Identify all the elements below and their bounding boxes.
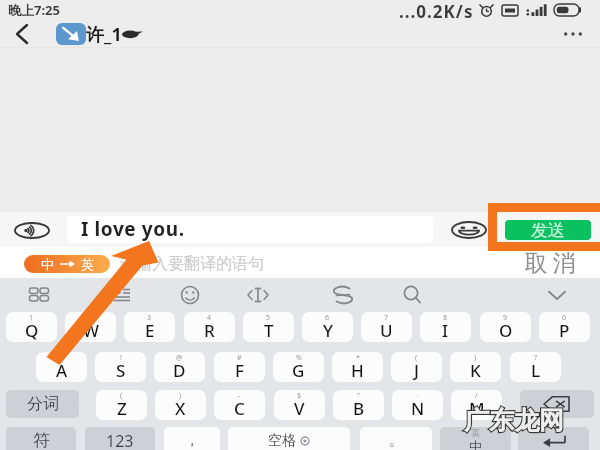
button[interactable]: Clipboard bbox=[106, 282, 138, 306]
button[interactable]: Handwriting bbox=[327, 282, 359, 306]
staticText: I love you. bbox=[81, 216, 185, 242]
staticText: 许_1 bbox=[86, 22, 122, 46]
button[interactable]: 0 bbox=[539, 312, 590, 342]
button[interactable]: Voice input bbox=[9, 216, 55, 245]
staticText: X bbox=[175, 397, 186, 420]
button[interactable]: $ bbox=[274, 390, 325, 420]
staticText: 取消 bbox=[522, 249, 578, 277]
staticText: # bbox=[237, 353, 242, 363]
button[interactable]: 中 bbox=[24, 255, 110, 273]
button[interactable]: 6 bbox=[302, 312, 353, 342]
staticText: 请输入要翻译的语句 bbox=[120, 254, 264, 274]
button[interactable]: 空格 bbox=[228, 427, 350, 450]
button[interactable]: * bbox=[332, 352, 383, 382]
staticText: G bbox=[292, 359, 305, 382]
button[interactable]: 4 bbox=[184, 312, 235, 342]
button[interactable]: Backspace bbox=[520, 390, 594, 418]
staticText: Z bbox=[117, 397, 127, 420]
button[interactable]: 英 bbox=[440, 427, 511, 450]
button[interactable]: Search bbox=[396, 282, 428, 306]
button[interactable]: ) bbox=[155, 390, 206, 420]
staticText: J bbox=[414, 359, 419, 382]
staticText: 6 bbox=[325, 313, 330, 323]
button[interactable]: 5 bbox=[243, 312, 294, 342]
button[interactable]: 1 bbox=[6, 312, 57, 342]
staticText: $ bbox=[297, 391, 302, 401]
staticText: ( bbox=[415, 353, 418, 363]
button[interactable]: ) bbox=[450, 352, 501, 382]
button[interactable]: ( bbox=[96, 390, 147, 420]
button[interactable]: 3 bbox=[124, 312, 175, 342]
staticText: ) bbox=[474, 353, 477, 363]
button[interactable]: I love you. bbox=[67, 216, 433, 243]
staticText: B bbox=[353, 397, 365, 420]
button[interactable]: 符 bbox=[6, 427, 76, 450]
staticText: ! bbox=[120, 353, 122, 363]
button[interactable]: - bbox=[214, 390, 265, 420]
button[interactable]: Edit text bbox=[242, 282, 274, 306]
staticText: K bbox=[470, 359, 481, 382]
button[interactable]: Emoji bbox=[446, 215, 491, 244]
staticText: ， bbox=[185, 432, 199, 450]
staticText: 1 bbox=[29, 313, 34, 323]
button[interactable]: 分词 bbox=[6, 390, 79, 418]
button[interactable]: · bbox=[392, 390, 443, 420]
button[interactable]: 9 bbox=[480, 312, 531, 342]
staticText: - bbox=[238, 391, 241, 401]
button[interactable]: Hide keyboard bbox=[541, 282, 573, 306]
button[interactable]: Emoji bbox=[174, 282, 206, 306]
staticText: · bbox=[417, 391, 419, 401]
staticText: 8 bbox=[443, 313, 448, 323]
button[interactable]: / bbox=[451, 390, 502, 420]
button[interactable]: 取消 bbox=[513, 249, 587, 277]
button[interactable]: 许_1 bbox=[56, 20, 143, 48]
staticText: 。 bbox=[389, 432, 403, 450]
button[interactable]: ! bbox=[95, 352, 146, 382]
staticText: 3 bbox=[147, 313, 152, 323]
staticText: O bbox=[499, 319, 513, 342]
button[interactable]: 。 bbox=[360, 427, 432, 450]
button[interactable]: # bbox=[214, 352, 265, 382]
staticText: 9 bbox=[503, 313, 508, 323]
button[interactable]: 8 bbox=[420, 312, 471, 342]
staticText: 4 bbox=[207, 313, 212, 323]
button[interactable]: % bbox=[273, 352, 324, 382]
staticText: S bbox=[116, 359, 126, 382]
staticText: / bbox=[475, 391, 478, 401]
button[interactable]: ， bbox=[164, 427, 220, 450]
staticText: D bbox=[173, 359, 186, 382]
staticText: W bbox=[83, 319, 99, 342]
button[interactable]: 7 bbox=[361, 312, 412, 342]
staticText: % bbox=[296, 353, 302, 363]
button[interactable]: Enter bbox=[518, 427, 589, 450]
staticText: R bbox=[204, 319, 215, 342]
button[interactable]: More options bbox=[556, 20, 590, 48]
staticText: @ bbox=[176, 353, 183, 363]
staticText: T bbox=[264, 319, 274, 342]
button[interactable]: Back bbox=[0, 20, 42, 48]
button[interactable]: 2 bbox=[65, 312, 116, 342]
staticText: ? bbox=[534, 353, 538, 363]
button[interactable]: ? bbox=[510, 352, 561, 382]
staticText: F bbox=[235, 359, 244, 382]
button[interactable]: ( bbox=[391, 352, 442, 382]
button[interactable]: 123 bbox=[85, 427, 155, 450]
staticText: C bbox=[234, 397, 245, 420]
staticText: 发送 bbox=[531, 220, 565, 240]
staticText: 中 bbox=[469, 438, 482, 450]
button[interactable]: 发送 bbox=[505, 220, 591, 240]
staticText: I bbox=[442, 319, 449, 342]
staticText: 英 bbox=[471, 427, 480, 438]
staticText: 5 bbox=[266, 313, 271, 323]
staticText: 晚上7:25 bbox=[8, 1, 60, 19]
staticText: 空格 bbox=[268, 432, 296, 450]
button[interactable]: ~ bbox=[36, 352, 87, 382]
staticText: ) bbox=[179, 391, 182, 401]
button[interactable]: Keyboard layouts bbox=[23, 282, 55, 306]
staticText: 符 bbox=[33, 430, 50, 450]
staticText: ...0.2K/s bbox=[399, 0, 474, 20]
staticText: 英 bbox=[81, 256, 94, 272]
button[interactable]: @ bbox=[154, 352, 205, 382]
button[interactable]: " bbox=[333, 390, 384, 420]
